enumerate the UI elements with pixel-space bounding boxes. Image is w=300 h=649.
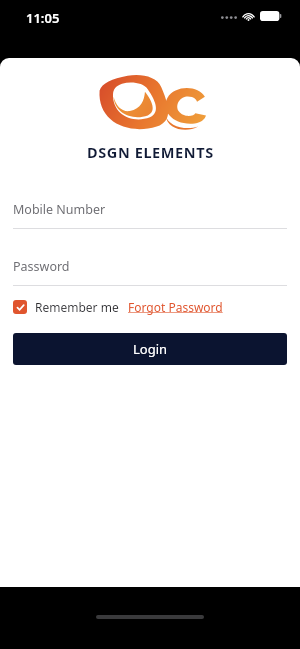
staticText: Login	[133, 340, 168, 358]
staticText: Mobile Number	[13, 201, 106, 218]
button[interactable]: Forgot Password	[128, 299, 223, 315]
staticText: DSGN ELEMENTS	[87, 142, 214, 162]
button[interactable]: Remember me	[13, 299, 119, 315]
staticText: Password	[13, 258, 70, 275]
button[interactable]: Mobile Number	[13, 198, 287, 220]
button[interactable]: Login	[13, 333, 287, 365]
staticText: 11:05	[26, 9, 60, 27]
button[interactable]: Password	[13, 255, 287, 277]
staticText: Remember me	[35, 299, 119, 315]
staticText: Forgot Password	[128, 299, 223, 315]
